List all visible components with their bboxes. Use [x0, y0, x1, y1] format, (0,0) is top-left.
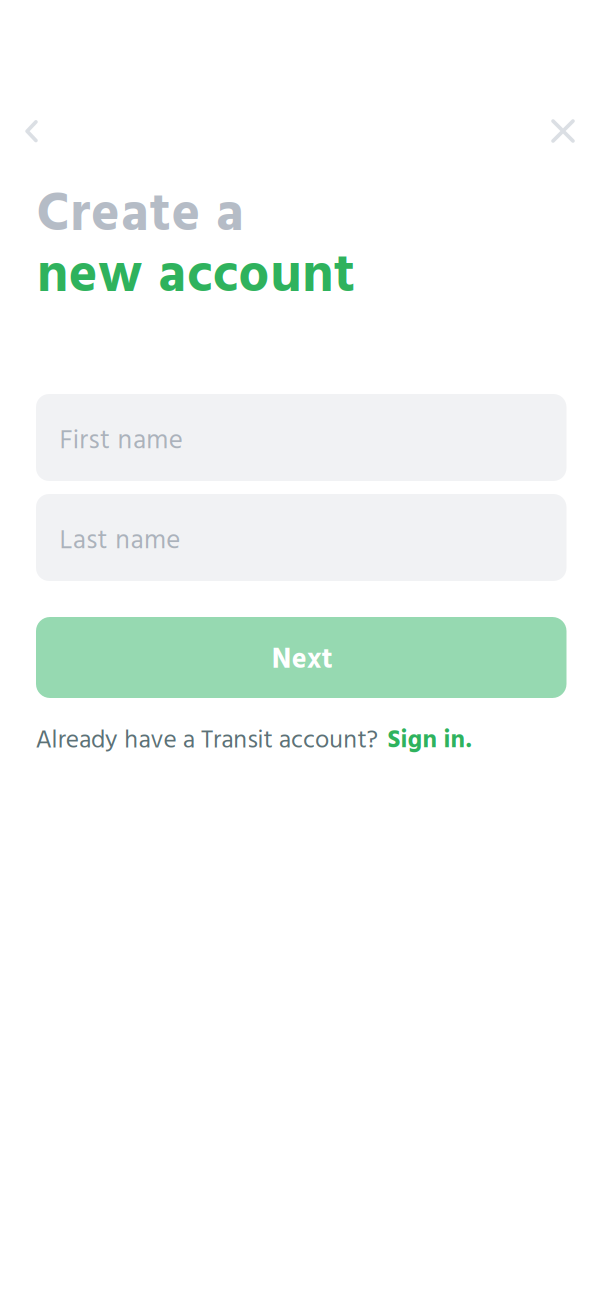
- staticText: Last name: [59, 520, 180, 563]
- button[interactable]: Last name: [36, 494, 566, 581]
- staticText: First name: [59, 420, 183, 463]
- staticText: Create a: [36, 173, 244, 259]
- staticText: Sign in.: [387, 721, 471, 761]
- button[interactable]: Back: [7, 107, 55, 155]
- button[interactable]: First name: [36, 394, 566, 481]
- staticText: Already have a Transit account?: [35, 721, 377, 761]
- button[interactable]: Sign in.: [387, 721, 471, 761]
- staticText: Next: [272, 638, 333, 683]
- button[interactable]: Next: [36, 617, 566, 698]
- staticText: new account: [37, 234, 355, 320]
- button[interactable]: Close: [539, 107, 587, 155]
